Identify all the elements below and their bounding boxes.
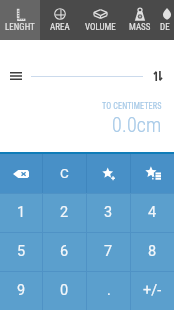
staticText: 1 bbox=[17, 204, 26, 221]
button[interactable]: 9 bbox=[0, 272, 42, 310]
staticText: LENGHT bbox=[5, 22, 35, 33]
staticText: 0.0cm bbox=[112, 113, 162, 136]
staticText: +/- bbox=[143, 282, 162, 299]
staticText: 4 bbox=[148, 204, 157, 221]
button[interactable]: +/- bbox=[131, 272, 174, 310]
staticText: 0mm bbox=[0, 16, 162, 46]
button[interactable]: 8 bbox=[131, 233, 174, 271]
staticText: 6 bbox=[60, 243, 69, 260]
staticText: 8 bbox=[148, 243, 157, 260]
staticText: AREA bbox=[50, 22, 70, 33]
button[interactable]: 5 bbox=[0, 233, 42, 271]
button[interactable]: AREA bbox=[40, 0, 80, 40]
staticText: 5 bbox=[17, 243, 26, 260]
staticText: 2 bbox=[60, 204, 69, 221]
staticText: 0 bbox=[60, 282, 69, 299]
button[interactable]: 7 bbox=[87, 233, 130, 271]
button[interactable]: 0 bbox=[43, 272, 86, 310]
button[interactable]: 1 bbox=[0, 194, 42, 232]
staticText: 3 bbox=[104, 204, 113, 221]
button[interactable]: DENSITY bbox=[160, 0, 174, 40]
staticText: MASS bbox=[129, 22, 151, 33]
button[interactable]: 2 bbox=[43, 194, 86, 232]
button[interactable]: Choose unit bbox=[4, 64, 28, 88]
staticText: TO CENTIMETERS bbox=[102, 101, 162, 111]
staticText: 9 bbox=[17, 282, 26, 299]
button[interactable]: MASS bbox=[120, 0, 160, 40]
staticText: 7 bbox=[104, 243, 113, 260]
staticText: DENSITY bbox=[160, 22, 174, 33]
button[interactable]: C bbox=[43, 154, 86, 193]
button[interactable]: 3 bbox=[87, 194, 130, 232]
staticText: C bbox=[60, 165, 69, 181]
button[interactable]: Favorites list bbox=[131, 154, 174, 193]
button[interactable]: Add to favorites bbox=[87, 154, 130, 193]
button[interactable]: Backspace bbox=[0, 154, 42, 193]
button[interactable]: . bbox=[87, 272, 130, 310]
staticText: . bbox=[107, 282, 111, 299]
staticText: VOLUME bbox=[85, 22, 116, 33]
button[interactable]: Swap units bbox=[146, 64, 169, 87]
button[interactable]: 6 bbox=[43, 233, 86, 271]
button[interactable]: 4 bbox=[131, 194, 174, 232]
button[interactable]: LENGHT bbox=[0, 0, 40, 40]
button[interactable]: VOLUME bbox=[80, 0, 120, 40]
